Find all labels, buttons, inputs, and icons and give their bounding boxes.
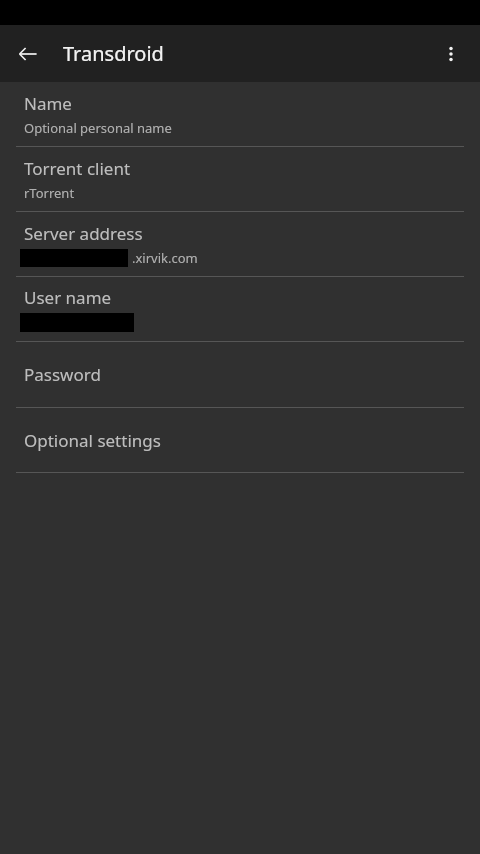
staticText: Server address [24, 222, 143, 245]
staticText: Password [24, 363, 101, 386]
button[interactable]: Server address [0, 212, 480, 276]
button[interactable]: Name [0, 82, 480, 146]
staticText: .xirvik.com [132, 249, 198, 267]
button[interactable]: Torrent client [0, 147, 480, 211]
staticText: Optional personal name [24, 119, 172, 137]
button[interactable]: Password [0, 342, 480, 407]
staticText: User name [24, 286, 112, 309]
button[interactable]: Optional settings [0, 408, 480, 472]
staticText: rTorrent [24, 184, 75, 202]
staticText: Name [24, 92, 72, 115]
staticText: Optional settings [24, 429, 161, 452]
staticText: Torrent client [24, 157, 131, 180]
button[interactable]: Back [8, 34, 48, 74]
button[interactable]: User name [0, 277, 480, 341]
staticText: Transdroid [63, 40, 164, 67]
button[interactable]: More options [428, 31, 474, 77]
